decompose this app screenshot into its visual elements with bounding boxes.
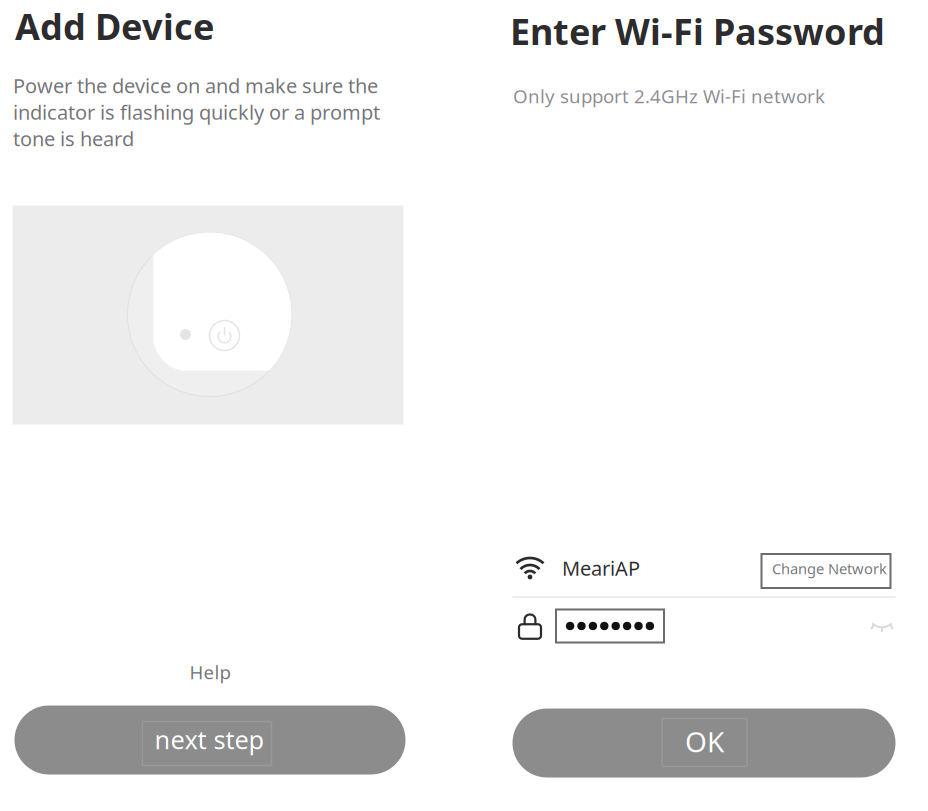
button[interactable]: next step (14, 705, 405, 774)
button[interactable]: Help (155, 655, 265, 689)
staticText: Only support 2.4GHz Wi-Fi network (513, 84, 825, 108)
staticText: Help (189, 660, 230, 684)
staticText: next step (154, 723, 264, 756)
staticText: Enter Wi-Fi Password (510, 7, 885, 55)
button[interactable]: Show password (860, 606, 904, 646)
staticText: Add Device (15, 2, 214, 50)
staticText: Power the device on and make sure the in… (13, 72, 380, 152)
button[interactable]: Change Network (761, 554, 890, 588)
button[interactable]: OK (512, 708, 895, 777)
staticText: Change Network (772, 559, 887, 578)
staticText: MeariAP (562, 555, 640, 581)
staticText: OK (685, 723, 724, 760)
